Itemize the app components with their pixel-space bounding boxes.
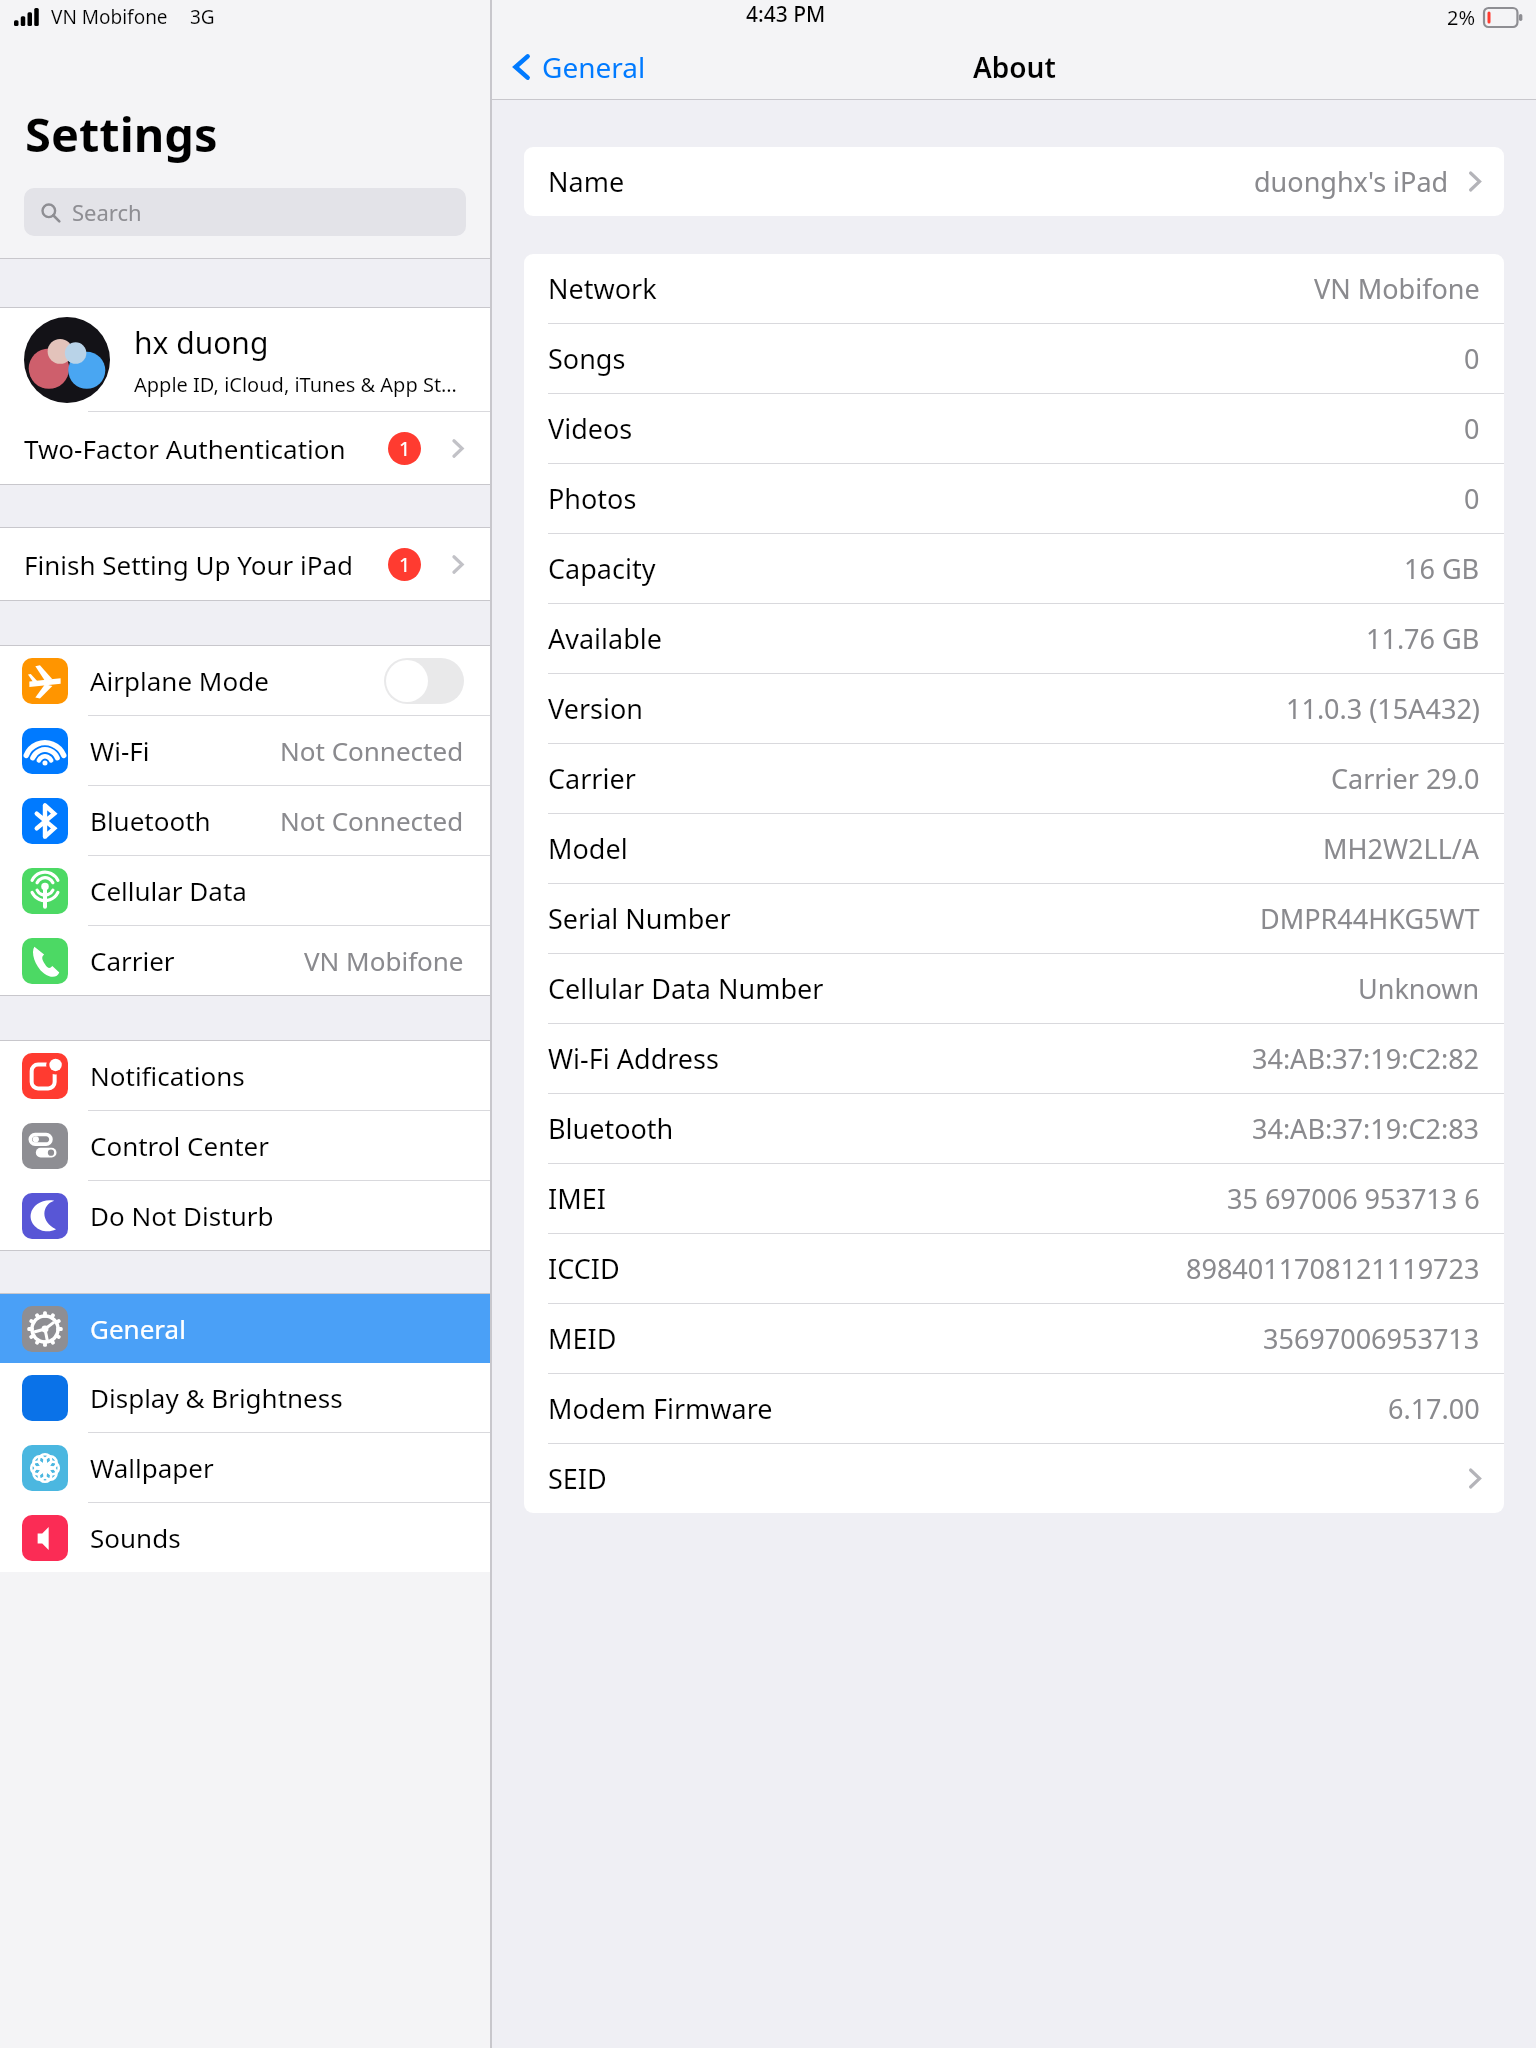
button[interactable]: Wallpaper bbox=[0, 1433, 490, 1502]
button[interactable]: Finish Setting Up Your iPad bbox=[0, 528, 490, 600]
staticText: 2% bbox=[1447, 4, 1476, 31]
staticText: Model bbox=[548, 830, 628, 867]
staticText: Sounds bbox=[90, 1520, 181, 1555]
staticText: Serial Number bbox=[548, 900, 731, 937]
staticText: 3G bbox=[190, 4, 215, 30]
staticText: Version bbox=[548, 690, 643, 727]
button[interactable]: Cellular Data bbox=[0, 856, 490, 925]
staticText: 1 bbox=[399, 435, 411, 462]
staticText: 0 bbox=[1464, 480, 1480, 517]
staticText: VN Mobifone bbox=[304, 943, 464, 978]
button[interactable]: Photos bbox=[524, 464, 1504, 533]
staticText: Do Not Disturb bbox=[90, 1198, 274, 1233]
staticText: Cellular Data Number bbox=[548, 970, 824, 1007]
button[interactable]: Search bbox=[24, 188, 466, 236]
button[interactable]: MEID bbox=[524, 1304, 1504, 1373]
staticText: 34:AB:37:19:C2:83 bbox=[1252, 1110, 1480, 1147]
staticText: hx duong bbox=[134, 322, 269, 363]
staticText: 11.76 GB bbox=[1366, 620, 1480, 657]
staticText: Notifications bbox=[90, 1058, 245, 1093]
staticText: Songs bbox=[548, 340, 626, 377]
staticText: ICCID bbox=[548, 1250, 620, 1287]
button[interactable]: General bbox=[508, 48, 646, 86]
button[interactable]: Do Not Disturb bbox=[0, 1181, 490, 1250]
staticText: Finish Setting Up Your iPad bbox=[24, 547, 353, 582]
button[interactable]: General bbox=[0, 1294, 490, 1363]
staticText: VN Mobifone bbox=[51, 4, 168, 30]
staticText: Wallpaper bbox=[90, 1450, 214, 1485]
staticText: 4:43 PM bbox=[746, 0, 826, 29]
button[interactable]: Sounds bbox=[0, 1503, 490, 1572]
staticText: Bluetooth bbox=[90, 803, 211, 838]
button[interactable]: Modem Firmware bbox=[524, 1374, 1504, 1443]
staticText: Settings bbox=[25, 102, 218, 166]
staticText: Carrier bbox=[548, 760, 636, 797]
staticText: Apple ID, iCloud, iTunes & App St… bbox=[134, 371, 457, 398]
staticText: 6.17.00 bbox=[1388, 1390, 1480, 1427]
button[interactable]: Bluetooth bbox=[0, 786, 490, 855]
staticText: 1 bbox=[399, 551, 411, 578]
button[interactable]: Two-Factor Authentication bbox=[0, 412, 490, 484]
staticText: 8984011708121119723 bbox=[1186, 1250, 1480, 1287]
staticText: 11.0.3 (15A432) bbox=[1286, 690, 1480, 727]
button[interactable]: IMEI bbox=[524, 1164, 1504, 1233]
staticText: General bbox=[90, 1311, 186, 1346]
button[interactable]: Model bbox=[524, 814, 1504, 883]
staticText: Wi-Fi bbox=[90, 733, 150, 768]
button[interactable]: hx duong bbox=[0, 308, 490, 411]
staticText: Capacity bbox=[548, 550, 656, 587]
staticText: Display & Brightness bbox=[90, 1380, 343, 1415]
staticText: 35 697006 953713 6 bbox=[1227, 1180, 1480, 1217]
staticText: About bbox=[973, 48, 1056, 86]
button[interactable]: Display & Brightness bbox=[0, 1363, 490, 1432]
button[interactable]: Wi-Fi bbox=[0, 716, 490, 785]
staticText: Airplane Mode bbox=[90, 663, 269, 698]
button[interactable]: Capacity bbox=[524, 534, 1504, 603]
button[interactable]: Version bbox=[524, 674, 1504, 743]
staticText: SEID bbox=[548, 1460, 607, 1497]
staticText: VN Mobifone bbox=[1314, 270, 1480, 307]
staticText: Search bbox=[72, 197, 142, 227]
button[interactable]: Serial Number bbox=[524, 884, 1504, 953]
button[interactable]: Network bbox=[524, 254, 1504, 323]
button[interactable]: Cellular Data Number bbox=[524, 954, 1504, 1023]
staticText: 35697006953713 bbox=[1263, 1320, 1480, 1357]
staticText: Videos bbox=[548, 410, 633, 447]
staticText: 16 GB bbox=[1404, 550, 1480, 587]
button[interactable]: Wi-Fi Address bbox=[524, 1024, 1504, 1093]
staticText: DMPR44HKG5WT bbox=[1260, 900, 1480, 937]
staticText: 34:AB:37:19:C2:82 bbox=[1252, 1040, 1480, 1077]
button[interactable]: SEID bbox=[524, 1444, 1504, 1513]
button[interactable]: Songs bbox=[524, 324, 1504, 393]
button[interactable]: Control Center bbox=[0, 1111, 490, 1180]
staticText: Not Connected bbox=[280, 733, 464, 768]
staticText: Network bbox=[548, 270, 657, 307]
staticText: Photos bbox=[548, 480, 637, 517]
button[interactable]: Carrier bbox=[0, 926, 490, 995]
staticText: IMEI bbox=[548, 1180, 606, 1217]
staticText: Not Connected bbox=[280, 803, 464, 838]
button[interactable]: ICCID bbox=[524, 1234, 1504, 1303]
staticText: 0 bbox=[1464, 410, 1480, 447]
staticText: 0 bbox=[1464, 340, 1480, 377]
button[interactable]: Airplane Mode toggle bbox=[384, 658, 464, 704]
button[interactable]: Name bbox=[524, 147, 1504, 216]
staticText: Cellular Data bbox=[90, 873, 247, 908]
staticText: Name bbox=[548, 163, 625, 200]
staticText: duonghx's iPad bbox=[1254, 163, 1449, 200]
staticText: General bbox=[542, 48, 646, 86]
button[interactable]: Videos bbox=[524, 394, 1504, 463]
button[interactable]: Airplane Mode bbox=[0, 646, 490, 715]
button[interactable]: Available bbox=[524, 604, 1504, 673]
staticText: Carrier bbox=[90, 943, 175, 978]
staticText: MEID bbox=[548, 1320, 617, 1357]
staticText: Wi-Fi Address bbox=[548, 1040, 719, 1077]
button[interactable]: Bluetooth bbox=[524, 1094, 1504, 1163]
staticText: Carrier 29.0 bbox=[1331, 760, 1480, 797]
staticText: Available bbox=[548, 620, 662, 657]
staticText: Modem Firmware bbox=[548, 1390, 773, 1427]
button[interactable]: Notifications bbox=[0, 1041, 490, 1110]
staticText: Control Center bbox=[90, 1128, 269, 1163]
button[interactable]: Carrier bbox=[524, 744, 1504, 813]
staticText: Unknown bbox=[1358, 970, 1480, 1007]
